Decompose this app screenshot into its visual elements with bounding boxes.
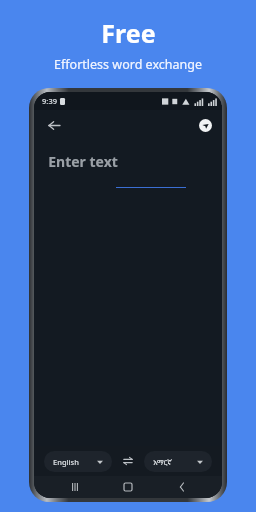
- button[interactable]: Swap languages: [119, 452, 137, 470]
- button[interactable]: Home: [115, 476, 141, 498]
- staticText: Effortless word exchange: [54, 56, 202, 73]
- button[interactable]: English: [44, 451, 112, 472]
- button[interactable]: አማርኛ: [144, 451, 212, 472]
- staticText: Enter text: [48, 152, 118, 171]
- button[interactable]: Recents: [62, 476, 88, 498]
- button[interactable]: Back: [44, 115, 64, 135]
- staticText: 9:39: [42, 96, 57, 106]
- staticText: English: [53, 457, 79, 467]
- button[interactable]: Back: [169, 476, 195, 498]
- button[interactable]: Send: [199, 119, 212, 132]
- staticText: Free: [101, 16, 156, 50]
- staticText: አማርኛ: [153, 457, 172, 467]
